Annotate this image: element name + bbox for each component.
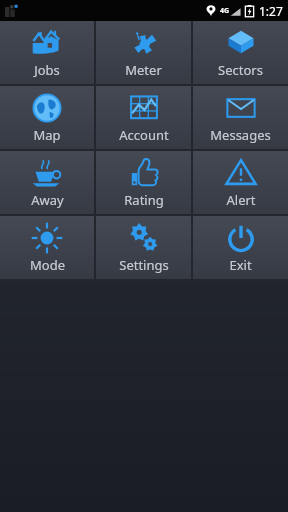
button[interactable]: Messages [193, 86, 288, 149]
button[interactable]: Settings [96, 216, 191, 279]
staticText: Sectors [218, 61, 263, 79]
button[interactable]: Away [0, 151, 94, 214]
staticText: Account [119, 126, 169, 144]
staticText: Rating [124, 191, 164, 209]
staticText: 4G [220, 6, 230, 16]
button[interactable]: Exit [193, 216, 288, 279]
staticText: Messages [210, 126, 271, 144]
staticText: Map [33, 126, 61, 144]
staticText: Meter [125, 61, 162, 79]
button[interactable]: Mode [0, 216, 94, 279]
staticText: Alert [226, 191, 256, 209]
button[interactable]: Rating [96, 151, 191, 214]
staticText: Settings [119, 256, 169, 274]
staticText: 1:27 [259, 3, 283, 19]
button[interactable]: Account [96, 86, 191, 149]
button[interactable]: Jobs [0, 21, 94, 84]
staticText: Mode [30, 256, 65, 274]
button[interactable]: Alert [193, 151, 288, 214]
button[interactable]: Sectors [193, 21, 288, 84]
staticText: Jobs [34, 61, 60, 79]
staticText: Exit [229, 256, 252, 274]
button[interactable]: Map [0, 86, 94, 149]
button[interactable]: Meter [96, 21, 191, 84]
staticText: Away [31, 191, 64, 209]
